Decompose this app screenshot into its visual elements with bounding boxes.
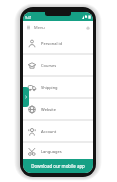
staticText: Personal id [41,41,62,46]
button[interactable]: Open drawer [23,87,29,107]
button[interactable]: Download our mobile app [23,159,93,173]
staticText: 9:41 [25,15,32,20]
button[interactable]: Courses [23,55,93,75]
staticText: Courses [41,63,57,68]
staticText: Account [41,129,57,134]
button[interactable]: Shipping [23,77,93,97]
button[interactable]: Personal id [23,33,93,53]
staticText: Download our mobile app [31,163,85,169]
staticText: Website [41,107,57,112]
button[interactable]: Languages [23,143,93,159]
staticText: Shipping [41,85,58,90]
button[interactable]: Website [23,99,93,119]
button[interactable]: Account [23,121,93,141]
staticText: Languages [41,149,62,154]
staticText: Menu [34,25,45,30]
button[interactable]: Notifications [84,24,91,31]
button[interactable]: Menu [25,24,32,31]
